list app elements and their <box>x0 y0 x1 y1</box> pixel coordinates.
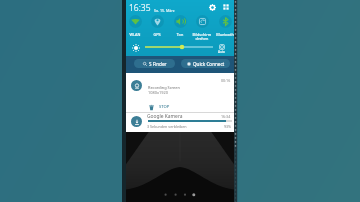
button[interactable]: Edit quick settings <box>221 2 231 12</box>
staticText: 16:35 <box>129 2 151 14</box>
staticText: Bildschirm drehen <box>191 32 213 41</box>
button[interactable]: Bildschirm drehen <box>191 14 213 40</box>
button[interactable]: GPS <box>146 14 168 40</box>
staticText: WLAN <box>124 32 146 37</box>
staticText: STOP <box>159 104 170 110</box>
button[interactable]: Bluetooth <box>214 14 236 40</box>
staticText: Ton <box>169 32 191 37</box>
button[interactable]: Quick Connect <box>181 59 230 68</box>
button[interactable]: Recording Screen <box>126 73 234 112</box>
button[interactable]: STOP <box>148 103 170 111</box>
staticText: 00:16 <box>221 78 231 83</box>
button[interactable]: Settings <box>207 2 217 12</box>
button[interactable]: WLAN <box>124 14 146 40</box>
button[interactable]: Ton <box>169 14 191 40</box>
staticText: 16:34 <box>221 114 231 119</box>
staticText: GPS <box>146 32 168 37</box>
button[interactable]: Google Kamera <box>126 112 234 132</box>
staticText: S Finder <box>149 61 167 67</box>
staticText: So. 15. März <box>154 8 175 13</box>
staticText: Quick Connect <box>193 61 225 67</box>
button[interactable]: Auto brightness <box>216 42 227 55</box>
staticText: Auto <box>216 50 227 54</box>
button[interactable]: S Finder <box>134 59 175 68</box>
staticText: Recording Screen <box>148 85 180 90</box>
staticText: Bluetooth <box>214 32 236 37</box>
staticText: 3 Sekunden verbleiben <box>147 124 187 129</box>
staticText: 1080x1920 <box>148 90 168 95</box>
staticText: Google Kamera <box>147 113 183 120</box>
staticText: 93% <box>224 124 232 129</box>
